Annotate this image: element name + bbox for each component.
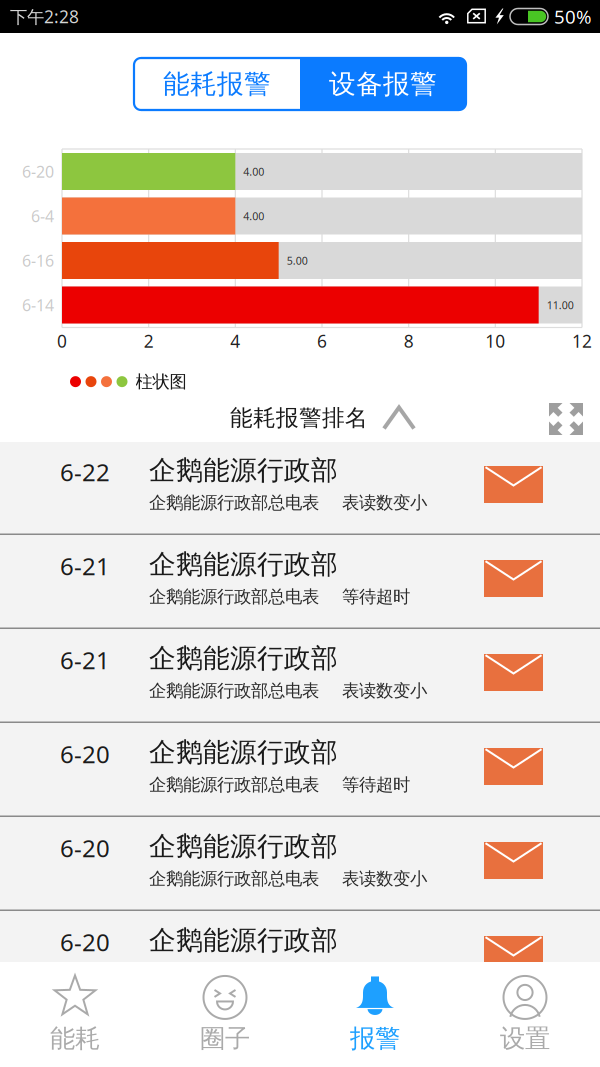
staticText: 6-20 (22, 161, 54, 182)
staticText: 表读数变小 (342, 962, 427, 983)
staticText: 企鹅能源行政部 (149, 924, 338, 957)
staticText: 0 (57, 329, 67, 352)
staticText: 企鹅能源行政部总电表 (149, 774, 319, 795)
staticText: 等待超时 (342, 586, 410, 607)
staticText: 企鹅能源行政部总电表 (149, 868, 319, 889)
button[interactable]: 全屏 (543, 397, 589, 441)
staticText: 6-22 (60, 456, 110, 488)
staticText: 企鹅能源行政部 (149, 454, 338, 487)
staticText: 10 (485, 329, 505, 352)
staticText: 企鹅能源行政部 (149, 642, 338, 675)
staticText: 8 (404, 329, 414, 352)
staticText: 等待超时 (342, 774, 410, 795)
button[interactable]: 6-22 (0, 442, 600, 535)
button[interactable]: 设备报警 (300, 58, 466, 110)
staticText: 企鹅能源行政部 (149, 548, 338, 581)
button[interactable]: 6-20 (0, 818, 600, 911)
staticText: 表读数变小 (342, 868, 427, 889)
staticText: 12 (572, 329, 592, 352)
staticText: 6 (317, 329, 327, 352)
staticText: 能耗报警 (163, 68, 271, 100)
staticText: 6-16 (22, 250, 54, 271)
staticText: 表读数变小 (342, 680, 427, 701)
staticText: 4 (230, 329, 240, 352)
staticText: 5.00 (287, 253, 308, 268)
staticText: 4.00 (243, 209, 264, 223)
staticText: 圈子 (200, 1023, 250, 1054)
staticText: 企鹅能源行政部总电表 (149, 962, 319, 983)
button[interactable]: 6-20 (0, 912, 600, 1005)
button[interactable]: 能耗报警排名 (230, 401, 416, 435)
staticText: 6-21 (60, 644, 110, 676)
staticText: 11.00 (547, 298, 574, 312)
button[interactable]: 6-21 (0, 536, 600, 629)
staticText: 4.00 (243, 164, 264, 179)
staticText: 能耗 (50, 1023, 100, 1054)
button[interactable]: 设置 (450, 962, 600, 1067)
staticText: 表读数变小 (342, 492, 427, 513)
staticText: 6-20 (60, 738, 110, 770)
button[interactable]: 6-21 (0, 630, 600, 723)
staticText: 6-20 (60, 832, 110, 864)
staticText: 柱状图 (135, 371, 186, 392)
staticText: 2 (144, 329, 154, 352)
staticText: 企鹅能源行政部 (149, 830, 338, 863)
button[interactable]: 圈子 (150, 962, 300, 1067)
staticText: 企鹅能源行政部 (149, 736, 338, 769)
staticText: 企鹅能源行政部总电表 (149, 680, 319, 701)
staticText: 6-4 (31, 205, 54, 227)
button[interactable]: 能耗 (0, 962, 150, 1067)
button[interactable]: 6-20 (0, 724, 600, 817)
staticText: 企鹅能源行政部总电表 (149, 586, 319, 607)
staticText: 企鹅能源行政部总电表 (149, 492, 319, 513)
button[interactable]: 报警 (300, 962, 450, 1067)
staticText: 6-21 (60, 550, 110, 582)
staticText: 设置 (500, 1023, 550, 1054)
staticText: 能耗报警排名 (230, 404, 368, 432)
staticText: 设备报警 (329, 68, 437, 100)
staticText: 50% (554, 4, 592, 29)
button[interactable]: 能耗报警 (134, 58, 300, 110)
staticText: 6-20 (60, 926, 110, 958)
staticText: 报警 (350, 1023, 400, 1054)
staticText: 下午2:28 (10, 5, 79, 28)
staticText: 6-14 (22, 294, 54, 316)
